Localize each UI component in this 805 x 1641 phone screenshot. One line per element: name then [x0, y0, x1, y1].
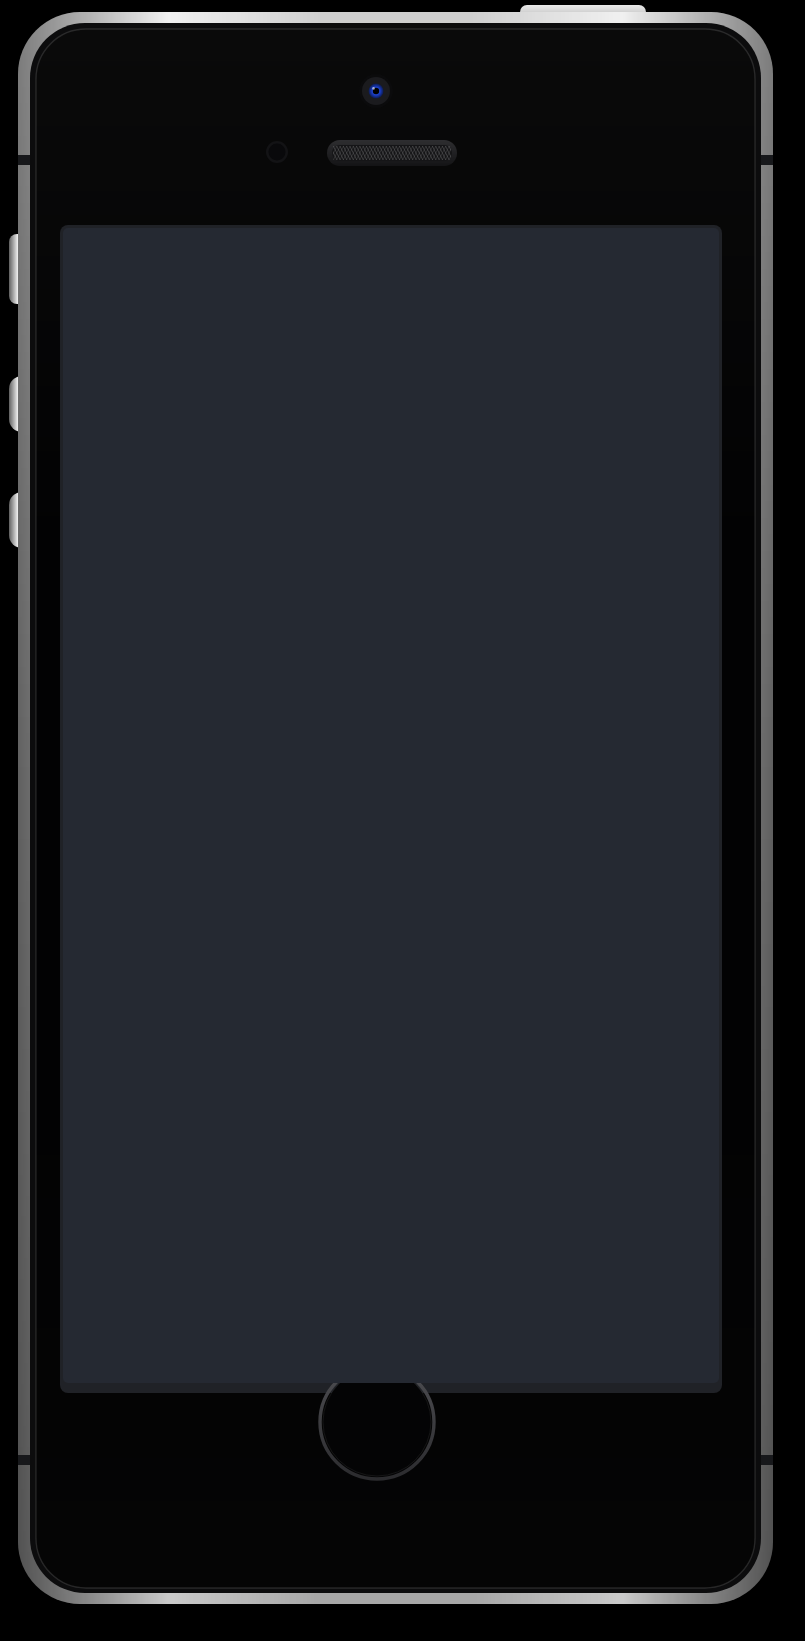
button[interactable]: Volume up [4, 374, 36, 434]
button[interactable]: Volume down [4, 490, 36, 550]
button[interactable]: Power [518, 0, 648, 26]
button[interactable]: Ring silent switch [6, 232, 36, 306]
button[interactable]: Home [318, 1364, 436, 1482]
